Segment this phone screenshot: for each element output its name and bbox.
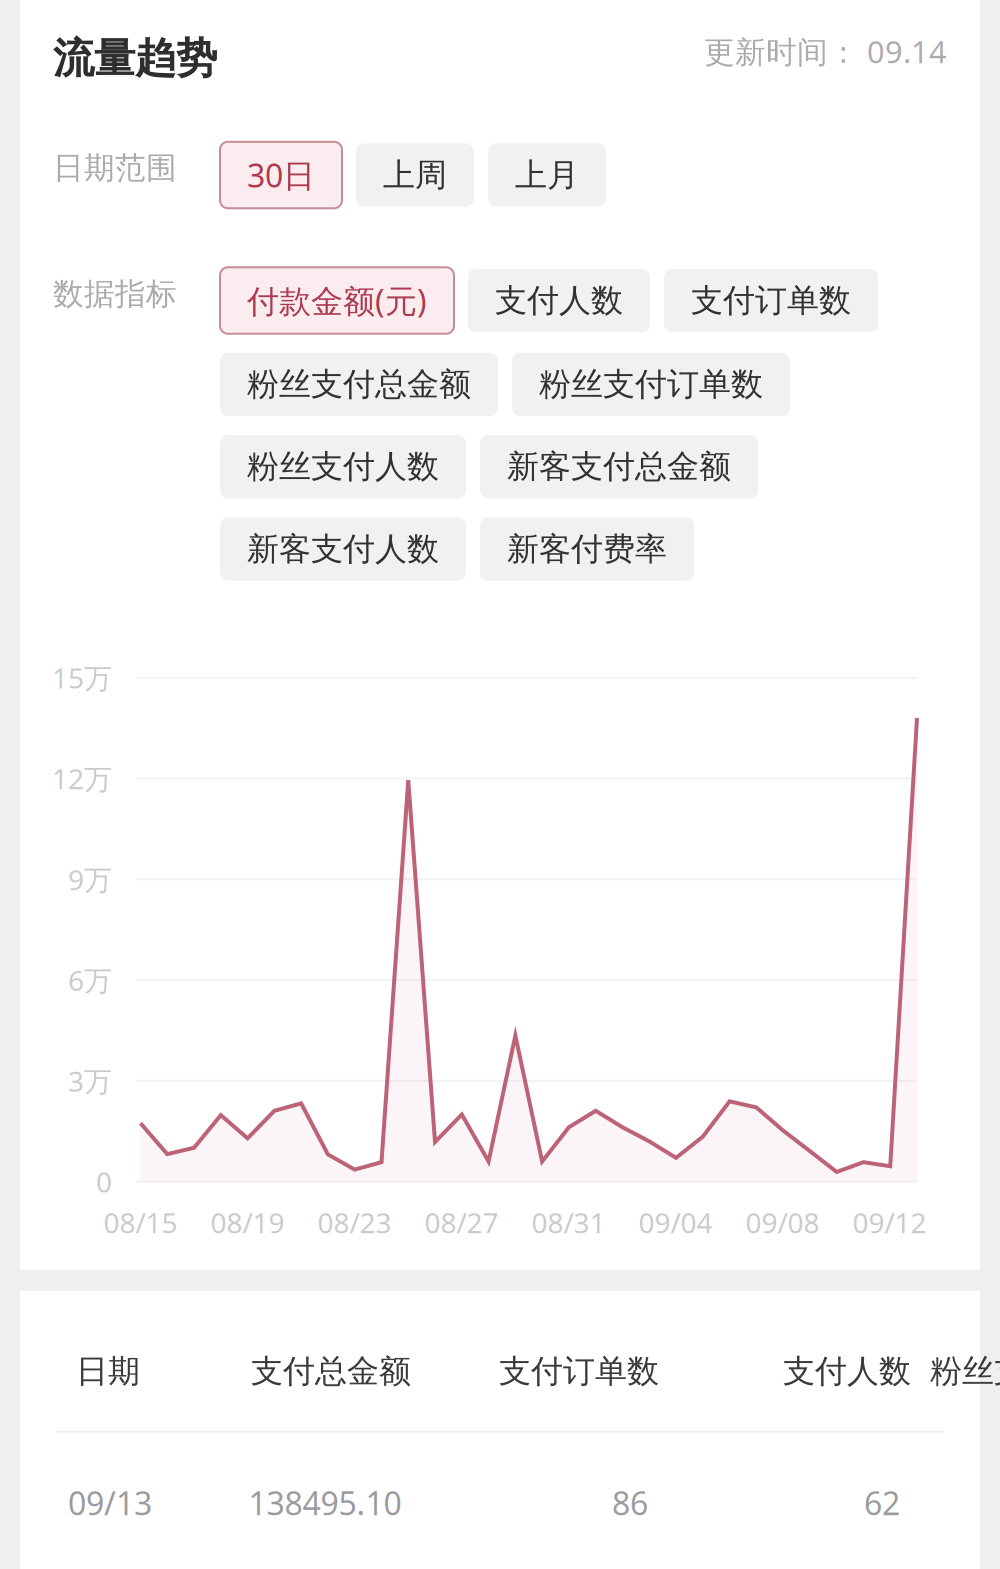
button[interactable]: 上月 [488,143,606,207]
staticText: 08/15 [103,1204,177,1241]
staticText: 9万 [68,861,112,898]
button[interactable]: 支付人数 [468,269,650,332]
staticText: 上周 [383,155,447,195]
staticText: 日期 [76,1352,140,1391]
staticText: 62 [864,1482,900,1524]
staticText: 流量趋势 [53,33,217,84]
button[interactable]: 付款金额(元) [220,267,454,334]
button[interactable]: 新客支付人数 [220,517,466,581]
staticText: 新客付费率 [507,529,667,569]
staticText: 粉丝支付总金额 [930,1352,1000,1391]
staticText: 30日 [247,154,315,196]
button[interactable]: 粉丝支付订单数 [512,353,790,416]
staticText: 86 [612,1482,648,1524]
button[interactable]: 上周 [356,143,474,207]
staticText: 3万 [68,1062,112,1099]
staticText: 新客支付人数 [247,529,439,569]
button[interactable]: 粉丝支付人数 [220,435,466,498]
staticText: 日期范围 [53,149,177,187]
staticText: 粉丝支付订单数 [539,365,763,404]
staticText: 支付人数 [495,281,623,320]
staticText: 支付总金额 [251,1352,411,1391]
button[interactable]: 新客支付总金额 [480,435,758,498]
staticText: 0 [96,1163,112,1200]
staticText: 09/08 [745,1204,819,1241]
staticText: 数据指标 [53,275,177,313]
staticText: 09/12 [852,1204,926,1241]
button[interactable]: 30日 [220,142,342,208]
staticText: 08/23 [317,1204,391,1241]
button[interactable]: 支付订单数 [664,269,878,332]
button[interactable]: 粉丝支付总金额 [220,353,498,416]
staticText: 支付订单数 [499,1352,659,1391]
staticText: 138495.10 [248,1482,401,1524]
staticText: 支付订单数 [691,281,851,320]
staticText: 09/13 [68,1482,152,1524]
button[interactable]: 新客付费率 [480,517,694,581]
staticText: 08/19 [210,1204,284,1241]
staticText: 6万 [68,961,112,999]
staticText: 15万 [52,659,112,696]
staticText: 08/27 [424,1204,498,1241]
staticText: 08/31 [531,1204,605,1241]
staticText: 新客支付总金额 [507,447,731,486]
staticText: 12万 [52,760,112,797]
staticText: 上月 [515,155,579,195]
staticText: 付款金额(元) [247,279,427,322]
staticText: 更新时间： 09.14 [704,31,947,72]
staticText: 09/04 [638,1204,712,1241]
staticText: 粉丝支付总金额 [247,365,471,404]
staticText: 粉丝支付人数 [247,447,439,486]
staticText: 支付人数 [783,1352,911,1391]
